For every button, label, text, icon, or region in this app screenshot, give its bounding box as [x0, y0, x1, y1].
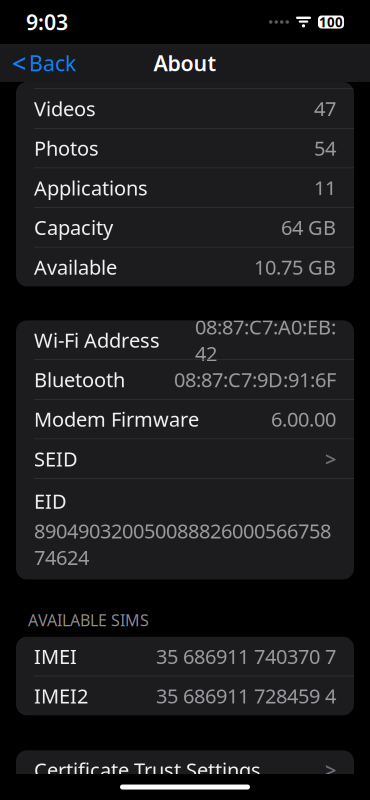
staticText: SEID [34, 445, 78, 472]
button[interactable]: < [0, 45, 88, 81]
staticText: Certificate Trust Settings [34, 756, 261, 783]
staticText: EID [34, 488, 67, 514]
staticText: 47 [314, 95, 336, 122]
staticText: Capacity [34, 214, 113, 241]
staticText: > [325, 445, 336, 472]
staticText: 89049032005008882600056675874624 [34, 517, 331, 570]
staticText: About [153, 49, 216, 77]
staticText: IMEI [34, 643, 77, 669]
staticText: 11 [314, 174, 336, 201]
button[interactable]: SEID [16, 439, 354, 478]
staticText: AVAILABLE SIMS [28, 609, 149, 631]
staticText: Bluetooth [34, 366, 125, 393]
staticText: 9:03 [26, 8, 68, 36]
staticText: 100 [319, 13, 343, 31]
staticText: > [325, 756, 336, 783]
staticText: < [12, 46, 26, 80]
staticText: Applications [34, 174, 148, 201]
staticText: Videos [34, 95, 96, 122]
staticText: Available [34, 254, 117, 280]
staticText: IMEI2 [34, 682, 88, 709]
staticText: 35 686911 740370 7 [156, 643, 336, 669]
staticText: 10.75 GB [254, 254, 336, 280]
staticText: 08:87:C7:A0:EB:42 [195, 313, 336, 366]
staticText: 35 686911 728459 4 [156, 682, 336, 709]
staticText: Photos [34, 135, 99, 161]
staticText: 6.00.00 [271, 406, 336, 432]
button[interactable]: Certificate Trust Settings [16, 750, 354, 789]
staticText: Back [29, 49, 76, 77]
staticText: 54 [314, 135, 336, 161]
staticText: 64 GB [281, 214, 336, 241]
staticText: Modem Firmware [34, 406, 199, 432]
staticText: 08:87:C7:9D:91:6F [174, 366, 336, 393]
staticText: Wi-Fi Address [34, 327, 160, 353]
